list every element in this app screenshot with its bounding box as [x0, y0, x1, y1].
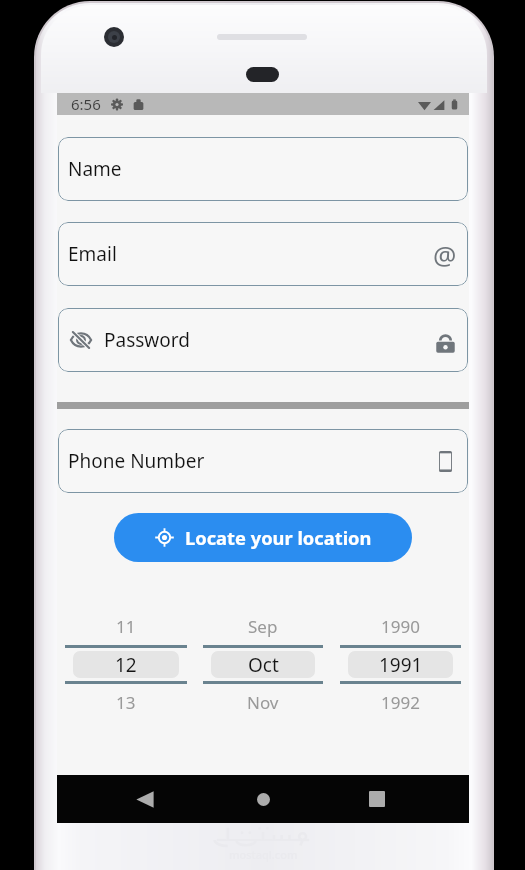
button[interactable]: Name: [58, 137, 468, 201]
staticText: 13: [116, 691, 136, 714]
staticText: Name: [68, 156, 122, 182]
button[interactable]: Home: [217, 775, 309, 823]
staticText: 11: [116, 615, 136, 638]
staticText: Email: [68, 241, 117, 267]
staticText: 12: [115, 652, 137, 678]
staticText: Password: [104, 327, 190, 353]
staticText: 1992: [381, 691, 420, 714]
button[interactable]: Locate your location: [114, 513, 412, 562]
staticText: 1990: [381, 615, 420, 638]
button[interactable]: 12: [65, 648, 187, 681]
button[interactable]: Email: [58, 222, 468, 286]
staticText: Oct: [248, 652, 279, 678]
button[interactable]: Phone Number: [58, 429, 468, 493]
staticText: Sep: [248, 615, 278, 638]
button[interactable]: Oct: [203, 648, 323, 681]
staticText: 1991: [379, 652, 423, 678]
staticText: Nov: [247, 691, 279, 714]
staticText: Locate your location: [185, 525, 372, 550]
button[interactable]: Recent apps: [331, 775, 423, 823]
staticText: @: [433, 237, 457, 269]
staticText: 6:56: [71, 94, 101, 114]
button[interactable]: Back: [99, 775, 191, 823]
button[interactable]: Password: [58, 308, 468, 372]
staticText: Phone Number: [68, 448, 205, 474]
button[interactable]: 1991: [340, 648, 461, 681]
